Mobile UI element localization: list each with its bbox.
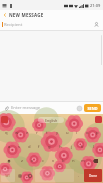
staticText: k xyxy=(81,144,84,150)
staticText: SEND xyxy=(87,106,98,111)
button[interactable]: m xyxy=(78,154,88,168)
button[interactable]: j xyxy=(66,140,77,154)
staticText: g xyxy=(48,144,51,150)
button[interactable]: x xyxy=(27,154,38,168)
staticText: y xyxy=(56,130,59,136)
button[interactable]: d xyxy=(24,140,34,154)
staticText: h xyxy=(59,144,62,150)
button[interactable]: o xyxy=(82,125,92,140)
staticText: m xyxy=(81,158,85,164)
button[interactable]: !#1 xyxy=(1,169,15,182)
staticText: s xyxy=(18,144,21,150)
staticText: 21:09 xyxy=(90,3,101,8)
staticText: !#1 xyxy=(5,173,11,178)
button[interactable]: . xyxy=(74,169,84,182)
staticText: i xyxy=(76,130,78,136)
staticText: v xyxy=(52,158,55,164)
button[interactable]: Back xyxy=(0,10,9,19)
button[interactable]: Emoji keyboard xyxy=(25,169,35,182)
button[interactable]: f xyxy=(34,140,44,154)
staticText: b xyxy=(62,158,65,164)
button[interactable]: r xyxy=(32,125,42,140)
button[interactable]: i xyxy=(72,125,82,140)
button[interactable]: v xyxy=(48,154,58,168)
button[interactable]: English xyxy=(38,117,64,123)
staticText: r xyxy=(36,130,38,136)
button[interactable]: t xyxy=(42,125,52,140)
staticText: q xyxy=(5,130,8,136)
button[interactable]: b xyxy=(58,154,68,168)
button[interactable]: l xyxy=(88,140,99,154)
staticText: w xyxy=(15,130,19,136)
staticText: x xyxy=(31,158,34,164)
button[interactable]: e xyxy=(22,125,32,140)
button[interactable]: Space xyxy=(35,169,74,182)
button[interactable]: c xyxy=(38,154,48,168)
button[interactable]: w xyxy=(12,125,22,140)
staticText: o xyxy=(86,130,89,136)
button[interactable]: Delete xyxy=(88,154,102,168)
button[interactable]: Attach xyxy=(2,104,10,112)
staticText: . xyxy=(78,173,80,179)
staticText: z xyxy=(21,158,23,164)
staticText: j xyxy=(71,144,73,150)
staticText: c xyxy=(42,158,45,164)
staticText: l xyxy=(93,144,95,150)
staticText: a xyxy=(8,144,11,150)
button[interactable]: Contacts xyxy=(92,20,101,29)
staticText: Enter message xyxy=(11,105,75,111)
button[interactable]: s xyxy=(14,140,24,154)
staticText: n xyxy=(72,158,75,164)
staticText: Done xyxy=(89,174,98,178)
button[interactable]: k xyxy=(77,140,88,154)
button[interactable]: h xyxy=(55,140,66,154)
button[interactable]: z xyxy=(16,154,27,168)
button[interactable]: SEND xyxy=(84,104,101,112)
button[interactable]: q xyxy=(1,125,12,140)
button[interactable]: y xyxy=(52,125,62,140)
button[interactable]: n xyxy=(68,154,78,168)
staticText: English xyxy=(45,118,58,123)
button[interactable]: Shift xyxy=(1,154,16,168)
button[interactable]: Sticker xyxy=(1,116,8,123)
staticText: NEW MESSAGE xyxy=(9,12,44,18)
button[interactable]: p xyxy=(92,125,102,140)
button[interactable]: Done xyxy=(84,169,102,182)
button[interactable]: u xyxy=(62,125,72,140)
staticText: p xyxy=(96,130,99,136)
button[interactable]: Keyboard settings xyxy=(95,116,102,123)
button[interactable]: g xyxy=(44,140,55,154)
staticText: Recipient xyxy=(4,22,92,28)
staticText: t xyxy=(46,130,48,136)
staticText: d xyxy=(28,144,31,150)
staticText: u xyxy=(66,130,69,136)
staticText: f xyxy=(38,144,40,150)
staticText: e xyxy=(26,130,29,136)
button[interactable]: Emoji xyxy=(75,104,83,112)
button[interactable]: a xyxy=(4,140,14,154)
button[interactable]: Settings xyxy=(15,169,25,182)
